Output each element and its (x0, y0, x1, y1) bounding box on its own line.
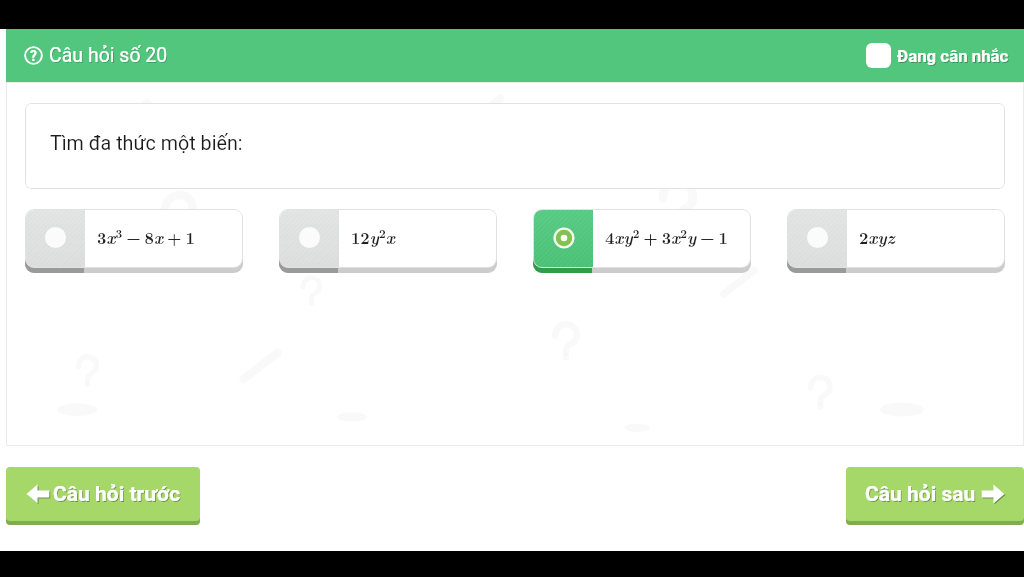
staticText: 12y2x (351, 225, 395, 249)
staticText: Đang cân nhắc (898, 47, 1010, 67)
staticText: Câu hỏi sau (866, 483, 977, 508)
button[interactable]: 4xy2 + 3x2y − 1 (533, 209, 751, 273)
button[interactable]: 2xyz (787, 209, 1005, 273)
staticText: 3x3 − 8x + 1 (97, 225, 195, 249)
button[interactable]: Câu hỏi sau (846, 467, 1024, 525)
staticText: 2xyz (859, 225, 895, 249)
staticText: Câu hỏi trước (53, 482, 181, 507)
button[interactable]: 3x3 − 8x + 1 (25, 209, 243, 273)
staticText: 4xy2 + 3x2y − 1 (605, 225, 728, 249)
staticText: Tìm đa thức một biến: (50, 132, 243, 155)
staticText: Đang cân nhắc (897, 46, 1009, 66)
staticText: Câu hỏi sau (865, 482, 976, 507)
staticText: Câu hỏi trước (54, 483, 182, 508)
button[interactable]: Trợ giúp câu hỏi (24, 46, 43, 65)
button[interactable]: 12y2x (279, 209, 497, 273)
button[interactable]: Câu hỏi trước (6, 467, 200, 525)
staticText: Câu hỏi số 20 (50, 45, 169, 68)
staticText: ? (30, 48, 37, 64)
staticText: Câu hỏi số 20 (49, 44, 168, 67)
button[interactable]: Đang cân nhắc (866, 43, 1009, 68)
